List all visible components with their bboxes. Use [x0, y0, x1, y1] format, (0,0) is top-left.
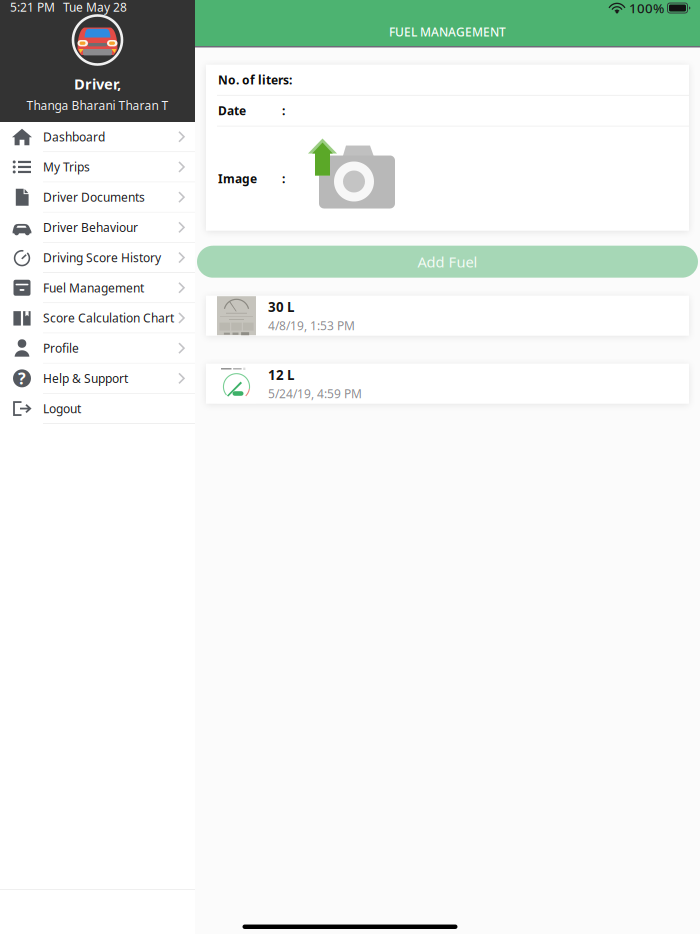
button[interactable]: Score Calculation Chart	[0, 303, 195, 333]
staticText: :	[282, 103, 285, 119]
staticText: 100%	[629, 0, 664, 17]
staticText: 5:21 PM	[10, 0, 55, 15]
button[interactable]: Driver Behaviour	[0, 213, 195, 243]
staticText: Image	[218, 170, 257, 186]
button[interactable]: Add Fuel	[197, 246, 698, 278]
button[interactable]: Logout	[0, 394, 195, 424]
staticText: Driving Score History	[43, 250, 161, 265]
button[interactable]: My Trips	[0, 152, 195, 182]
staticText: Score Calculation Chart	[43, 310, 174, 326]
button[interactable]: Profile	[0, 333, 195, 364]
button[interactable]: Driver Documents	[0, 182, 195, 213]
staticText: Driver,	[74, 74, 121, 93]
staticText: FUEL MANAGEMENT	[389, 24, 506, 40]
button[interactable]: 30 L	[206, 296, 689, 336]
staticText: 30 L	[268, 298, 294, 316]
staticText: Add Fuel	[417, 252, 477, 271]
staticText: Profile	[43, 340, 79, 356]
button[interactable]: 12 L	[206, 364, 689, 404]
staticText: Driver Behaviour	[43, 219, 138, 235]
staticText: Driver Documents	[43, 189, 145, 205]
staticText: Logout	[43, 401, 81, 416]
staticText: Tue May 28	[63, 0, 127, 15]
staticText: Date	[218, 103, 246, 119]
staticText: Fuel Management	[43, 280, 144, 296]
staticText: 12 L	[268, 366, 294, 384]
staticText: 4/8/19, 1:53 PM	[268, 318, 355, 333]
button[interactable]: Dashboard	[0, 122, 195, 152]
staticText: Thanga Bharani Tharan T	[26, 97, 168, 113]
staticText: ?	[18, 368, 26, 389]
staticText: No. of liters:	[218, 72, 292, 88]
staticText: My Trips	[43, 159, 90, 175]
staticText: Help & Support	[43, 370, 128, 386]
staticText: Dashboard	[43, 129, 105, 145]
button[interactable]: Fuel Management	[0, 273, 195, 303]
button[interactable]: ?	[0, 364, 195, 394]
staticText: 5/24/19, 4:59 PM	[268, 386, 362, 401]
button[interactable]: Driving Score History	[0, 243, 195, 273]
staticText: :	[282, 170, 285, 186]
